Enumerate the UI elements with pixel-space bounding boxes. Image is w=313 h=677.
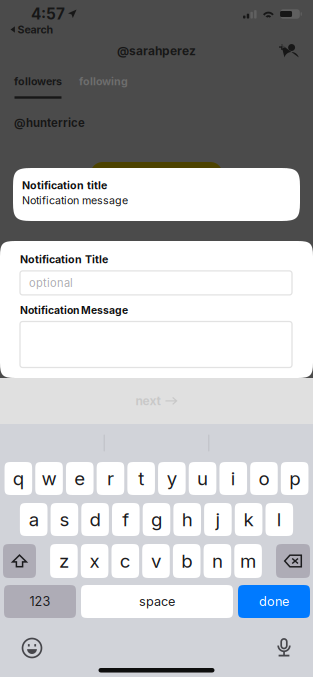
button[interactable]: v: [142, 544, 170, 578]
staticText: Search: [17, 23, 53, 36]
staticText: e: [74, 467, 85, 490]
button[interactable]: q: [5, 462, 32, 495]
staticText: u: [197, 467, 208, 490]
button[interactable]: b: [173, 544, 200, 578]
staticText: n: [212, 550, 223, 572]
button[interactable]: o: [250, 462, 278, 495]
staticText: i: [231, 467, 236, 490]
staticText: @sarahperez: [117, 44, 196, 58]
staticText: followers: [14, 75, 62, 88]
staticText: h: [182, 508, 193, 531]
button[interactable]: [20, 321, 292, 367]
button[interactable]: optional: [20, 271, 292, 295]
button[interactable]: p: [281, 462, 308, 495]
staticText: space: [139, 594, 175, 609]
staticText: l: [277, 508, 282, 531]
button[interactable]: j: [204, 503, 232, 536]
staticText: w: [42, 467, 57, 490]
staticText: j: [215, 508, 220, 531]
button[interactable]: h: [173, 503, 201, 536]
button[interactable]: i: [219, 462, 247, 495]
button[interactable]: followers: [14, 76, 62, 99]
staticText: k: [244, 508, 254, 531]
staticText: b: [181, 550, 192, 572]
button[interactable]: Shift: [3, 544, 36, 578]
button[interactable]: u: [189, 462, 216, 495]
staticText: r: [107, 467, 114, 490]
staticText: @hunterrice: [14, 116, 85, 130]
button[interactable]: k: [235, 503, 262, 536]
staticText: y: [167, 467, 177, 490]
button[interactable]: e: [66, 462, 94, 495]
staticText: p: [289, 467, 300, 490]
staticText: 123: [29, 594, 50, 609]
staticText: Notification Message: [20, 304, 128, 316]
button[interactable]: g: [143, 503, 170, 536]
staticText: 4:57: [31, 5, 65, 23]
button[interactable]: space: [81, 585, 233, 618]
staticText: f: [122, 508, 129, 531]
staticText: m: [240, 550, 256, 572]
button[interactable]: y: [158, 462, 186, 495]
button[interactable]: Add people: [276, 39, 302, 63]
button[interactable]: following: [79, 76, 128, 99]
staticText: g: [151, 508, 162, 531]
staticText: s: [59, 508, 69, 531]
staticText: x: [90, 550, 100, 572]
button[interactable]: c: [111, 544, 139, 578]
button[interactable]: Emoji keyboard: [18, 636, 46, 660]
button[interactable]: Dictate: [270, 636, 298, 660]
staticText: q: [13, 467, 24, 490]
staticText: next: [135, 394, 160, 408]
staticText: Notification title: [22, 179, 107, 192]
staticText: Notification Title: [20, 253, 108, 266]
staticText: t: [138, 467, 144, 490]
staticText: a: [29, 508, 39, 531]
staticText: d: [90, 508, 101, 531]
staticText: Notification message: [22, 194, 128, 207]
button[interactable]: w: [35, 462, 63, 495]
staticText: optional: [29, 276, 73, 290]
button[interactable]: x: [81, 544, 108, 578]
button[interactable]: s: [51, 503, 78, 536]
button[interactable]: t: [127, 462, 155, 495]
staticText: done: [259, 594, 289, 609]
button[interactable]: l: [265, 503, 293, 536]
button[interactable]: d: [81, 503, 109, 536]
button[interactable]: r: [97, 462, 124, 495]
staticText: o: [258, 467, 269, 490]
staticText: c: [120, 550, 131, 572]
button[interactable]: z: [50, 544, 78, 578]
button[interactable]: next: [135, 389, 177, 413]
button[interactable]: done: [238, 585, 310, 618]
button[interactable]: a: [20, 503, 47, 536]
button[interactable]: n: [204, 544, 231, 578]
staticText: following: [79, 75, 128, 88]
staticText: z: [59, 550, 69, 572]
button[interactable]: m: [234, 544, 262, 578]
staticText: v: [151, 550, 161, 572]
button[interactable]: f: [112, 503, 140, 536]
button[interactable]: 123: [4, 585, 76, 618]
button[interactable]: Delete: [276, 544, 310, 578]
